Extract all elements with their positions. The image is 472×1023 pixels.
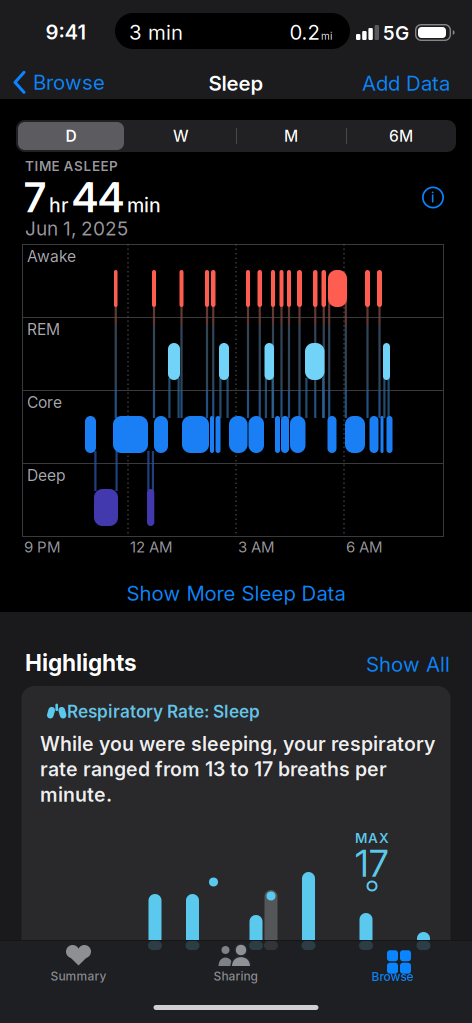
staticText: Show All <box>366 652 450 677</box>
staticText: minute. <box>40 783 112 806</box>
staticText: While you were sleeping, your respirator… <box>40 732 435 756</box>
staticText: 0.2 <box>289 20 319 45</box>
staticText: Core <box>27 393 62 412</box>
staticText: 6 AM <box>346 538 383 556</box>
staticText: rate ranged from 13 to 17 breaths per <box>40 757 387 781</box>
staticText: TIME ASLEEP <box>25 158 118 174</box>
staticText: 7 <box>24 173 46 222</box>
staticText: Browse <box>371 969 413 984</box>
button[interactable]: D <box>16 120 126 152</box>
staticText: 3 AM <box>238 538 275 556</box>
staticText: 9 PM <box>24 538 61 556</box>
staticText: Add Data <box>362 71 450 96</box>
staticText: min <box>127 193 161 217</box>
button[interactable]: Add Data <box>362 71 450 96</box>
button[interactable]: M <box>236 120 346 152</box>
staticText: MAX <box>355 830 389 846</box>
staticText: Deep <box>27 466 66 485</box>
button[interactable]: Respiratory Rate: Sleep <box>0 0 429 337</box>
button[interactable]: 6M <box>346 120 456 152</box>
staticText: 44 <box>72 173 124 222</box>
button[interactable]: i <box>422 186 444 208</box>
staticText: i <box>431 189 435 206</box>
staticText: mi <box>321 30 332 42</box>
button[interactable]: Show All <box>366 652 450 677</box>
staticText: Browse <box>33 70 105 95</box>
staticText: Respiratory Rate: Sleep <box>67 701 260 722</box>
staticText: Awake <box>27 247 76 266</box>
button[interactable]: W <box>126 120 236 152</box>
staticText: W <box>173 127 189 145</box>
button[interactable]: Summary <box>0 941 157 987</box>
button[interactable]: Browse <box>314 941 471 987</box>
button[interactable]: Show More Sleep Data <box>126 581 345 606</box>
staticText: M <box>284 127 298 145</box>
staticText: D <box>65 127 76 145</box>
staticText: Sleep <box>208 71 263 96</box>
button[interactable]: Sharing <box>157 941 314 987</box>
staticText: 5G <box>383 21 409 44</box>
staticText: 17 <box>355 841 389 886</box>
staticText: REM <box>27 320 60 339</box>
staticText: 12 AM <box>130 538 173 556</box>
staticText: Highlights <box>25 649 137 677</box>
staticText: 3 min <box>129 20 183 45</box>
staticText: Show More Sleep Data <box>126 581 345 606</box>
staticText: Sharing <box>213 969 257 983</box>
staticText: Jun 1, 2025 <box>25 217 128 240</box>
staticText: 6M <box>389 127 413 145</box>
button[interactable]: Browse <box>13 70 105 95</box>
staticText: Summary <box>50 969 106 983</box>
staticText: hr <box>49 193 69 217</box>
staticText: 9:41 <box>45 20 86 44</box>
